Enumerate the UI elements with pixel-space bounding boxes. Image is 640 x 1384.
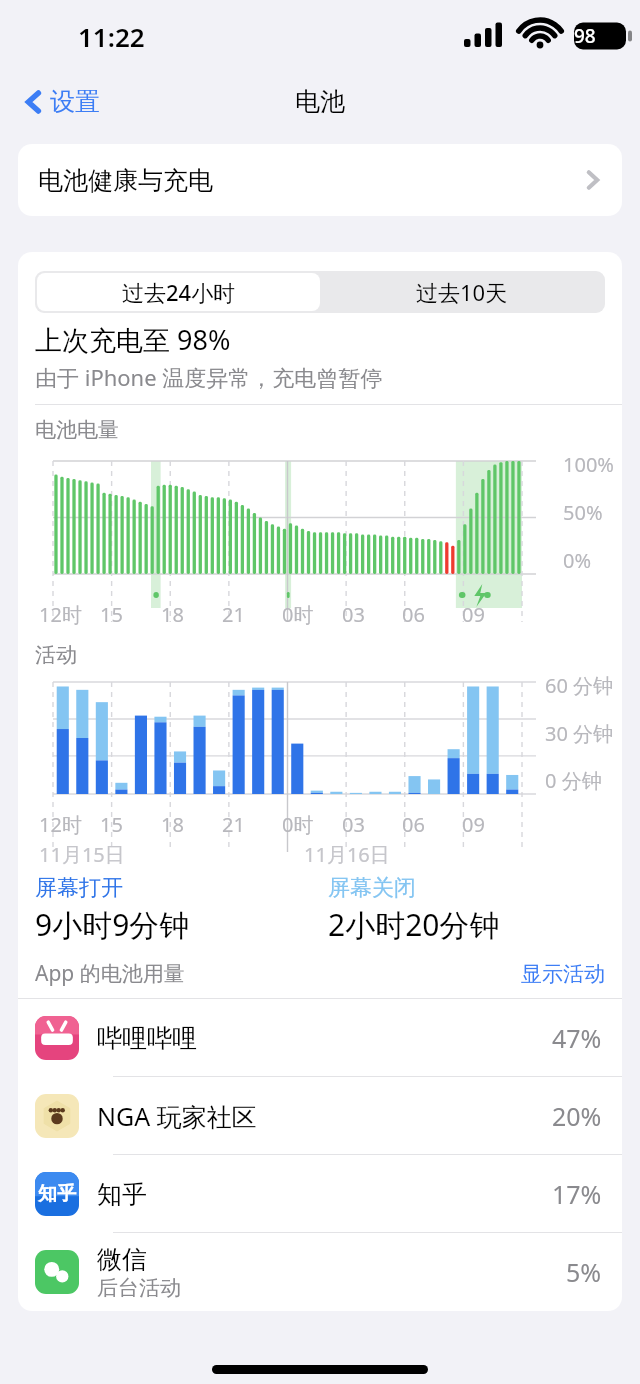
staticText: 屏幕打开 xyxy=(35,874,123,902)
button[interactable]: 哔哩哔哩 xyxy=(18,999,622,1077)
staticText: 09 xyxy=(462,811,522,838)
staticText: 20% xyxy=(552,1099,602,1133)
staticText: 过去10天 xyxy=(416,277,508,307)
staticText: 18 xyxy=(161,601,222,628)
staticText: 06 xyxy=(402,811,462,838)
button[interactable]: 显示活动 xyxy=(521,961,605,987)
staticText: 2小时20分钟 xyxy=(328,904,500,945)
staticText: 11月16日 xyxy=(304,841,622,868)
staticText: 显示活动 xyxy=(521,961,605,987)
staticText: 哔哩哔哩 xyxy=(97,1023,197,1054)
staticText: 过去24小时 xyxy=(122,277,236,307)
staticText: 由于 iPhone 温度异常，充电曾暂停 xyxy=(35,362,383,392)
staticText: 知乎 xyxy=(38,1182,76,1206)
staticText: 03 xyxy=(342,601,402,628)
button[interactable]: 电池健康与充电 xyxy=(18,144,622,216)
button[interactable]: NGA 玩家社区 xyxy=(18,1077,622,1155)
staticText: 03 xyxy=(342,811,402,838)
staticText: 电池 xyxy=(295,86,345,117)
button[interactable]: 微信 xyxy=(18,1233,622,1311)
staticText: 11:22 xyxy=(78,19,145,54)
staticText: 21 xyxy=(222,601,282,628)
staticText: 21 xyxy=(222,811,282,838)
staticText: 5% xyxy=(566,1255,602,1289)
staticText: 50% xyxy=(563,499,603,526)
staticText: 15 xyxy=(100,811,161,838)
staticText: 后台活动 xyxy=(97,1275,181,1301)
staticText: 12时 xyxy=(39,811,100,838)
staticText: 上次充电至 98% xyxy=(35,321,231,358)
staticText: 18 xyxy=(161,811,222,838)
staticText: 0% xyxy=(563,547,592,574)
staticText: App 的电池用量 xyxy=(35,959,185,988)
staticText: 30 分钟 xyxy=(545,720,614,747)
staticText: 活动 xyxy=(35,642,77,668)
staticText: 知乎 xyxy=(97,1179,147,1210)
staticText: 15 xyxy=(100,601,161,628)
staticText: 0 分钟 xyxy=(545,767,602,794)
staticText: 47% xyxy=(552,1021,602,1055)
staticText: 电池健康与充电 xyxy=(38,165,213,196)
staticText: NGA 玩家社区 xyxy=(97,1099,257,1133)
staticText: 0时 xyxy=(282,601,342,628)
staticText: 9小时9分钟 xyxy=(35,904,190,945)
button[interactable]: 过去10天 xyxy=(320,273,603,311)
staticText: 12时 xyxy=(39,601,100,628)
staticText: 屏幕关闭 xyxy=(328,874,416,902)
staticText: 11月15日 xyxy=(39,841,304,868)
staticText: 微信 xyxy=(97,1244,147,1275)
button[interactable]: 设置 xyxy=(18,82,106,121)
staticText: 电池电量 xyxy=(35,417,119,443)
staticText: 06 xyxy=(402,601,462,628)
button[interactable]: 过去24小时 xyxy=(37,273,320,311)
staticText: 设置 xyxy=(50,86,100,117)
button[interactable]: 知乎 xyxy=(18,1155,622,1233)
staticText: 17% xyxy=(552,1177,602,1211)
staticText: 0时 xyxy=(282,811,342,838)
staticText: 98 xyxy=(574,23,596,49)
staticText: 100% xyxy=(563,451,614,478)
staticText: 09 xyxy=(462,601,522,628)
staticText: 60 分钟 xyxy=(545,672,614,699)
